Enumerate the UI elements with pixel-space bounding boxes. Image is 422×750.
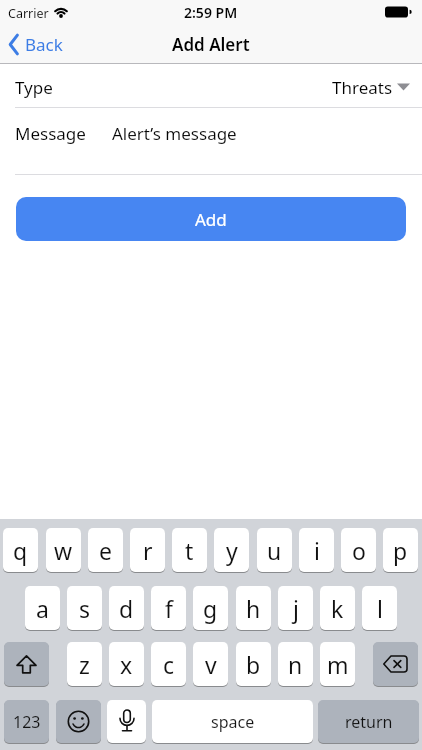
staticText: e bbox=[99, 535, 112, 566]
staticText: Add Alert bbox=[172, 33, 250, 56]
button[interactable]: return bbox=[318, 700, 419, 743]
staticText: r bbox=[143, 535, 153, 566]
staticText: h bbox=[246, 593, 261, 624]
staticText: a bbox=[36, 593, 49, 624]
staticText: o bbox=[352, 535, 366, 566]
button[interactable]: Message bbox=[0, 112, 422, 154]
button[interactable]: space bbox=[152, 700, 313, 743]
staticText: p bbox=[393, 535, 408, 566]
staticText: t bbox=[185, 535, 194, 566]
staticText: q bbox=[13, 535, 28, 566]
staticText: x bbox=[120, 649, 133, 680]
button[interactable] bbox=[373, 642, 418, 686]
button[interactable]: e bbox=[88, 528, 123, 572]
button[interactable] bbox=[56, 700, 101, 743]
button[interactable]: s bbox=[67, 586, 102, 630]
staticText: y bbox=[226, 535, 238, 566]
button[interactable]: Type bbox=[0, 66, 422, 108]
staticText: Type bbox=[15, 76, 53, 99]
button[interactable]: h bbox=[236, 586, 271, 630]
staticText: n bbox=[288, 649, 303, 680]
button[interactable]: Back bbox=[0, 25, 90, 64]
button[interactable]: Add bbox=[16, 197, 406, 241]
button[interactable]: i bbox=[299, 528, 334, 572]
button[interactable]: c bbox=[151, 642, 186, 686]
button[interactable]: l bbox=[362, 586, 397, 630]
button[interactable]: m bbox=[320, 642, 355, 686]
staticText: z bbox=[79, 649, 90, 680]
staticText: v bbox=[205, 649, 217, 680]
button[interactable]: y bbox=[214, 528, 249, 572]
staticText: m bbox=[327, 649, 349, 680]
staticText: Message bbox=[15, 122, 86, 145]
button[interactable]: o bbox=[341, 528, 376, 572]
staticText: f bbox=[165, 593, 173, 624]
button[interactable]: q bbox=[3, 528, 38, 572]
button[interactable]: n bbox=[278, 642, 313, 686]
staticText: Alert’s message bbox=[112, 122, 237, 145]
button[interactable] bbox=[4, 642, 49, 686]
staticText: Carrier bbox=[8, 5, 49, 22]
button[interactable]: u bbox=[257, 528, 292, 572]
staticText: return bbox=[345, 711, 393, 733]
button[interactable]: w bbox=[46, 528, 81, 572]
button[interactable]: p bbox=[383, 528, 418, 572]
button[interactable]: t bbox=[172, 528, 207, 572]
staticText: i bbox=[314, 535, 320, 566]
staticText: b bbox=[246, 649, 261, 680]
button[interactable]: 123 bbox=[4, 700, 49, 743]
staticText: Add bbox=[195, 208, 227, 231]
staticText: s bbox=[79, 593, 91, 624]
staticText: 123 bbox=[13, 711, 41, 733]
staticText: l bbox=[377, 593, 383, 624]
button[interactable]: v bbox=[193, 642, 228, 686]
staticText: u bbox=[267, 535, 282, 566]
button[interactable] bbox=[107, 700, 146, 743]
button[interactable]: a bbox=[25, 586, 60, 630]
button[interactable]: f bbox=[151, 586, 186, 630]
button[interactable]: b bbox=[236, 642, 271, 686]
staticText: j bbox=[293, 593, 299, 624]
staticText: k bbox=[331, 593, 344, 624]
staticText: Back bbox=[25, 33, 63, 56]
button[interactable]: g bbox=[193, 586, 228, 630]
staticText: space bbox=[211, 711, 255, 733]
button[interactable]: z bbox=[67, 642, 102, 686]
button[interactable]: r bbox=[130, 528, 165, 572]
staticText: w bbox=[54, 535, 73, 566]
staticText: g bbox=[203, 593, 218, 624]
staticText: 2:59 PM bbox=[184, 3, 238, 22]
button[interactable]: j bbox=[278, 586, 313, 630]
button[interactable]: d bbox=[109, 586, 144, 630]
staticText: c bbox=[163, 649, 175, 680]
staticText: d bbox=[119, 593, 134, 624]
button[interactable]: k bbox=[320, 586, 355, 630]
staticText: Threats bbox=[332, 76, 393, 99]
button[interactable]: x bbox=[109, 642, 144, 686]
